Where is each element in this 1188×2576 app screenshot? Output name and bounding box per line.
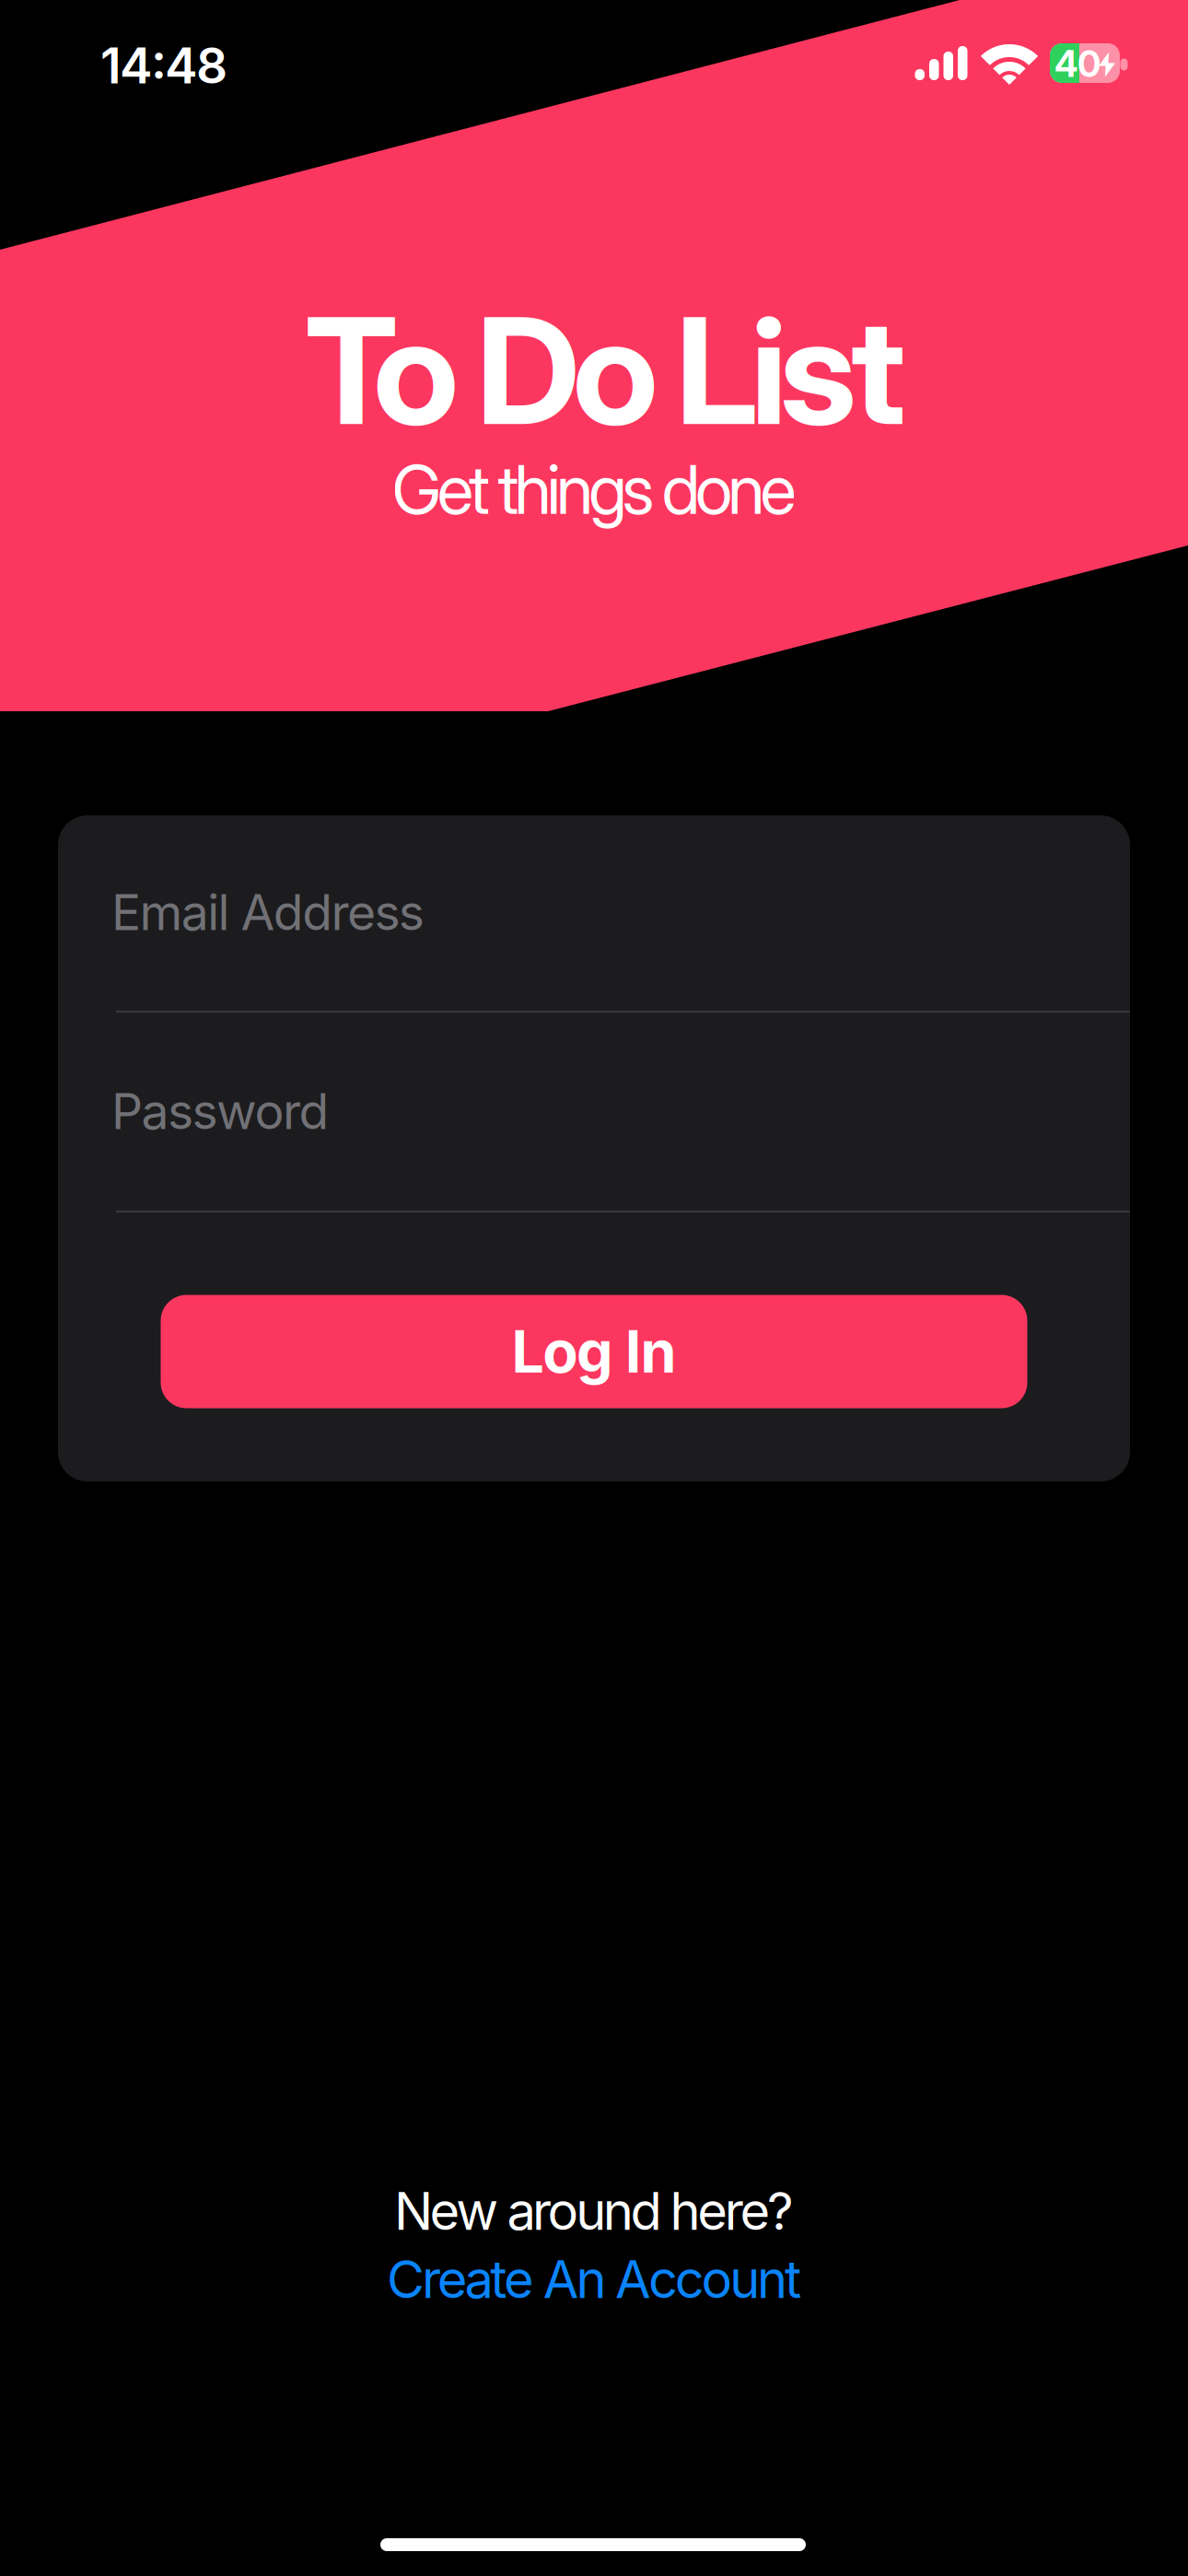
staticText: 40: [1054, 43, 1101, 85]
button[interactable]: Create An Account: [387, 2249, 801, 2310]
staticText: To Do List: [305, 281, 906, 460]
staticText: Email Address: [116, 884, 447, 942]
staticText: Password: [111, 1082, 329, 1140]
textField[interactable]: Email Address: [116, 884, 1130, 942]
staticText: Email Address: [111, 883, 424, 941]
staticText: Password: [116, 1082, 344, 1140]
secureTextField[interactable]: Password: [116, 1082, 1130, 1140]
staticText: Log In: [512, 1317, 676, 1386]
staticText: Create An Account: [387, 2249, 801, 2310]
staticText: 14:48: [100, 36, 227, 94]
button[interactable]: Log In: [161, 1295, 1027, 1408]
staticText: Get things done: [392, 448, 796, 530]
staticText: New around here?: [394, 2181, 794, 2242]
